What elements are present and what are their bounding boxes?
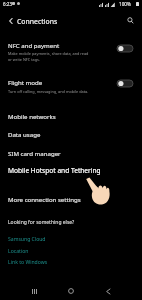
button[interactable]: Home [63,283,79,299]
staticText: Data usage [8,130,41,138]
staticText: Samsung Cloud [8,236,46,243]
staticText: Location [8,248,29,255]
staticText: or write NFC tags. [8,57,40,62]
button[interactable]: Mobile networks [0,106,142,125]
staticText: Link to Windows [8,259,48,266]
staticText: NFC and payment [8,41,60,49]
button[interactable]: Search [123,13,138,28]
staticText: SIM card manager [8,149,61,157]
button[interactable]: Data usage [0,124,142,143]
staticText: Make mobile payments, share data, and re… [8,51,89,56]
button[interactable]: Toggle [117,45,133,52]
button[interactable]: SIM card manager [0,143,142,162]
button[interactable]: Toggle [117,80,133,87]
button[interactable] [0,69,142,95]
staticText: More connection settings [8,195,81,203]
button[interactable]: More connection settings [0,189,142,208]
button[interactable]: Recent apps [26,283,42,299]
staticText: Mobile Hotspot and Tethering [8,166,101,175]
button[interactable]: Location [0,245,142,257]
staticText: Connections [17,17,58,26]
button[interactable]: Back [100,283,116,299]
staticText: 100% [119,1,131,7]
button[interactable]: Link to Windows [0,256,142,268]
staticText: Mobile networks [8,112,56,120]
button[interactable]: Samsung Cloud [0,233,142,245]
button[interactable] [0,32,142,58]
staticText: Turn off calling, messaging, and mobile … [8,89,89,94]
button[interactable]: Mobile Hotspot and Tethering [0,161,142,180]
staticText: 6:23 [3,1,13,7]
staticText: Flight mode [8,78,43,86]
button[interactable]: Back [3,13,18,28]
staticText: Looking for something else? [8,219,75,226]
